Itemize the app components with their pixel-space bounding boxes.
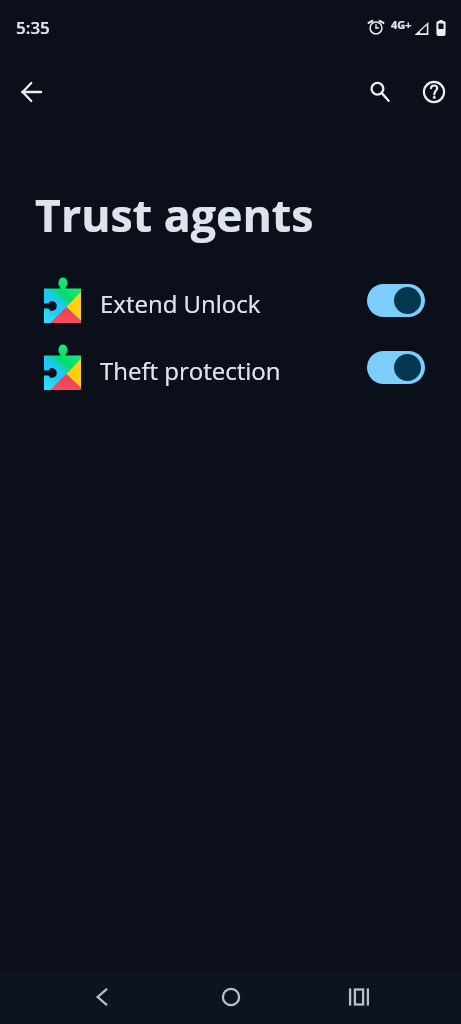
button[interactable]: Help <box>410 68 458 116</box>
button[interactable]: Extend Unlock <box>0 270 461 337</box>
staticText: 4G+ <box>391 17 412 32</box>
button[interactable]: On <box>367 284 425 317</box>
button[interactable]: Navigate up <box>8 68 56 116</box>
button[interactable]: Recent apps <box>332 970 386 1024</box>
button[interactable]: Theft protection <box>0 337 461 404</box>
button[interactable]: Home <box>204 970 258 1024</box>
button[interactable]: Back <box>75 970 129 1024</box>
button[interactable]: Search <box>355 68 403 116</box>
staticText: Extend Unlock <box>100 287 261 320</box>
staticText: Theft protection <box>100 354 281 387</box>
staticText: Trust agents <box>35 184 314 245</box>
staticText: 5:35 <box>16 16 50 39</box>
button[interactable]: On <box>367 351 425 384</box>
